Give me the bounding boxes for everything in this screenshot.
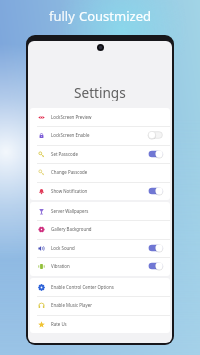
button[interactable]: Vibration [30,257,170,275]
button[interactable]: Toggle on [148,187,163,195]
button[interactable]: Enable Control Center Options [30,278,170,296]
button[interactable]: Set Passcode [30,145,170,163]
button[interactable]: Change Passcode [30,163,170,181]
button[interactable]: Toggle on [148,244,163,252]
staticText: Enable Control Center Options [51,284,163,290]
staticText: Settings [74,83,126,101]
button[interactable]: Rate Us [30,315,170,333]
staticText: LockScreen Enable [51,132,148,138]
staticText: LockScreen Preview [51,114,163,120]
button[interactable]: LockScreen Enable [30,126,170,144]
button[interactable]: Toggle off [148,131,163,139]
staticText: Rate Us [51,321,163,327]
button[interactable]: Enable Music Player [30,296,170,314]
button[interactable]: Server Wallpapers [30,202,170,220]
staticText: Lock Sound [51,245,148,251]
button[interactable]: Toggle on [148,262,163,270]
staticText: fully [49,7,79,25]
staticText: Server Wallpapers [51,208,163,214]
staticText: Gallery Background [51,226,163,232]
button[interactable]: Show Notification [30,182,170,200]
staticText: Coustmized [79,7,151,25]
button[interactable]: Gallery Background [30,220,170,238]
staticText: Set Passcode [51,151,148,157]
staticText: Enable Music Player [51,302,163,308]
button[interactable]: Lock Sound [30,239,170,257]
button[interactable]: LockScreen Preview [30,108,170,126]
staticText: Change Passcode [51,169,163,175]
staticText: Vibration [51,263,148,269]
staticText: Show Notification [51,188,148,194]
button[interactable]: Toggle on [148,150,163,158]
